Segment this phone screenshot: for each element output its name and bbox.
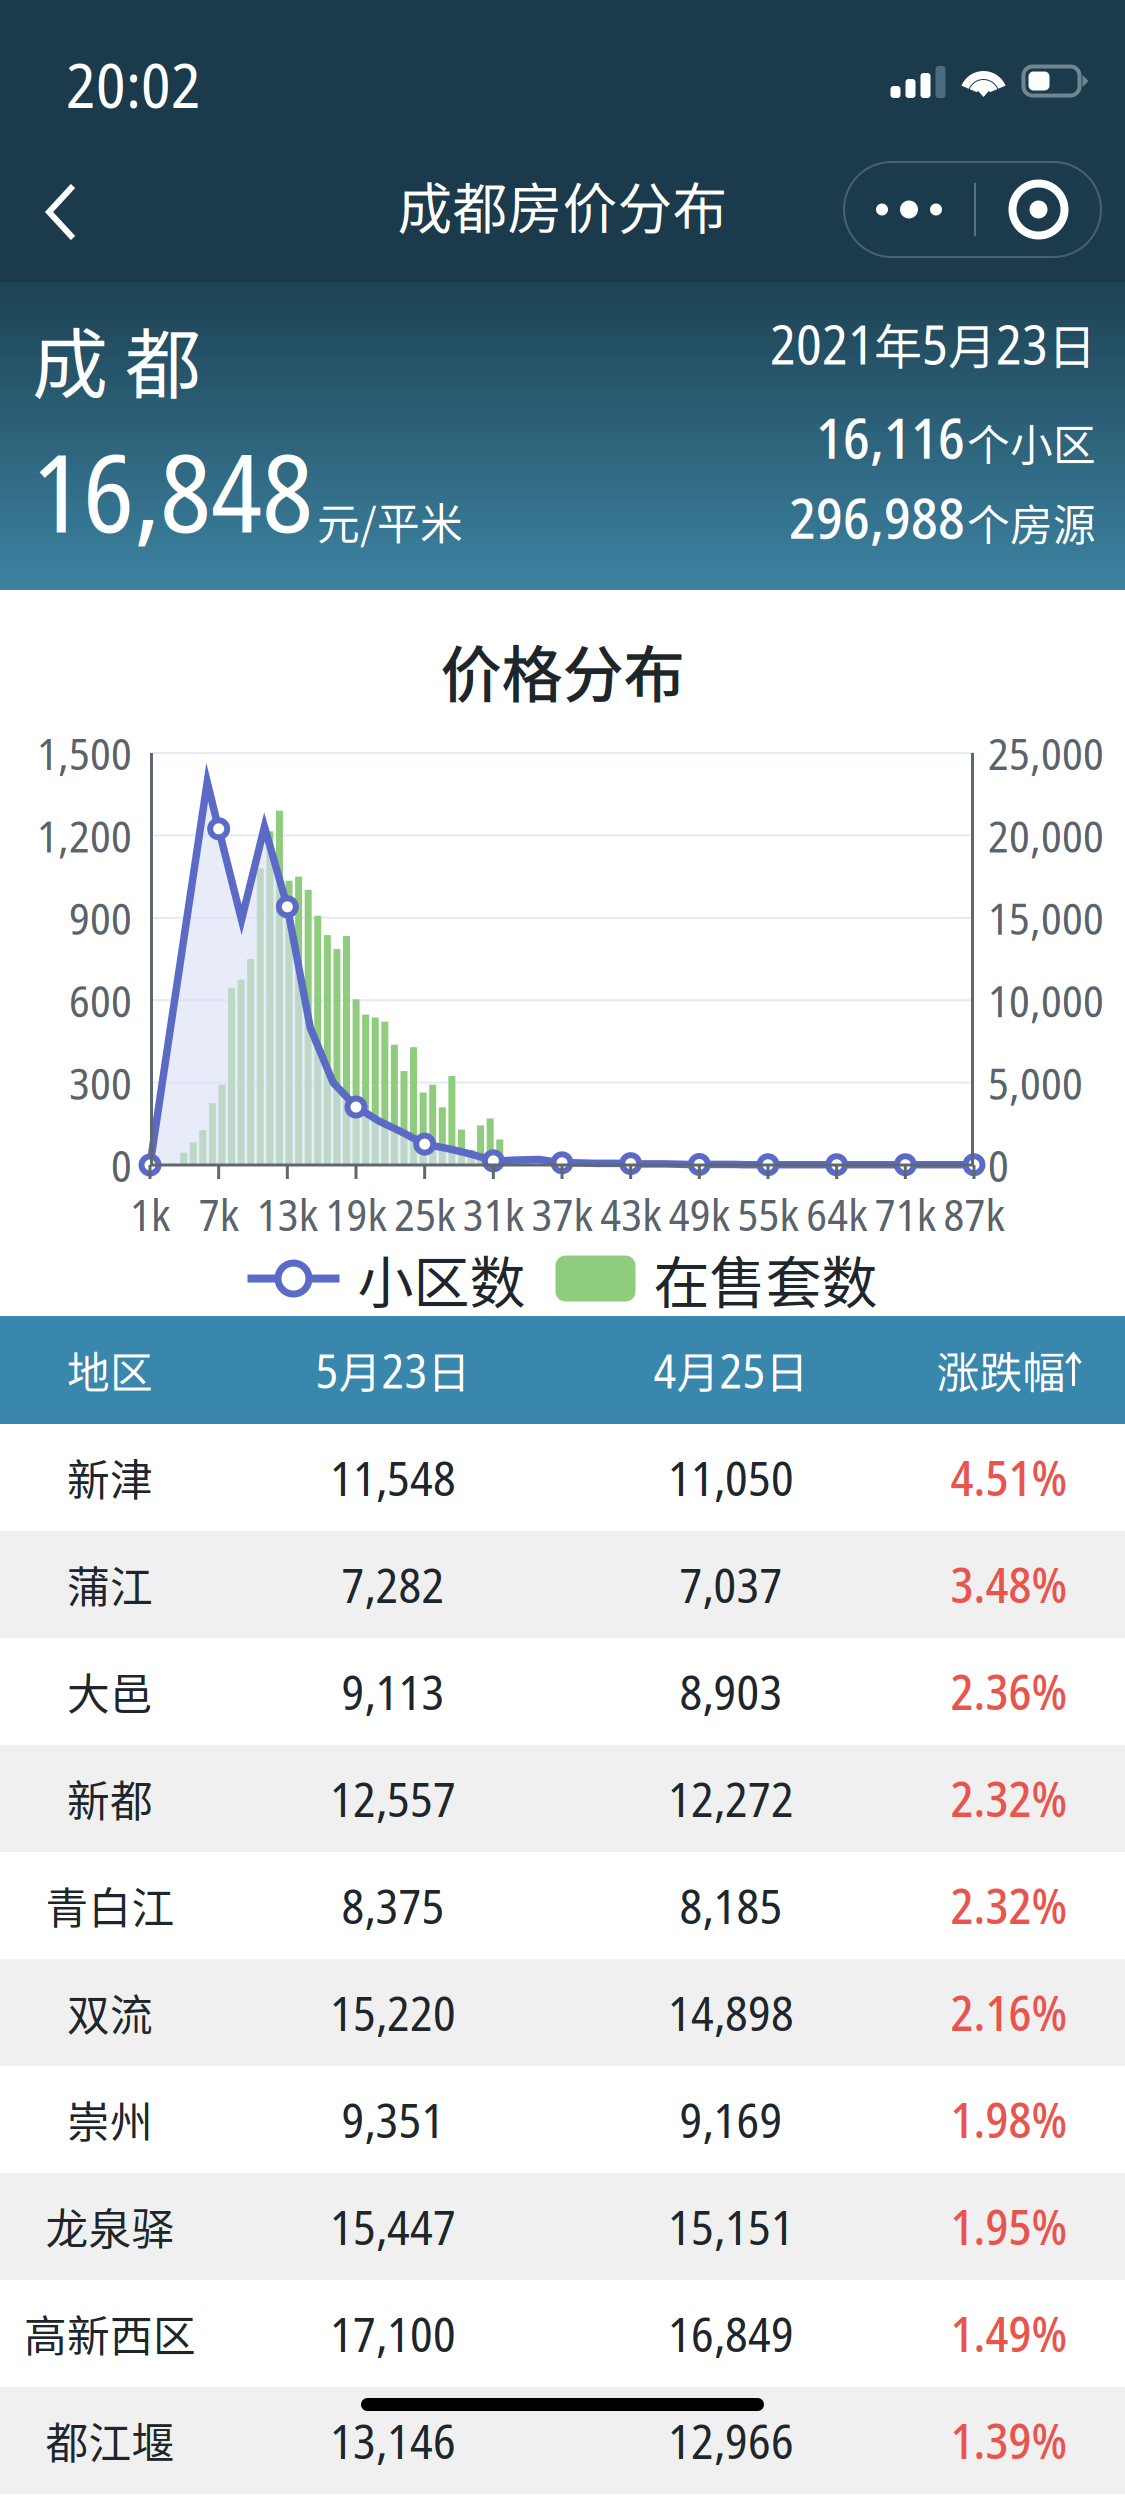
staticText: 青白江 [45, 1875, 174, 1936]
staticText: 日 [765, 1339, 808, 1401]
staticText: 2.32% [950, 1766, 1067, 1831]
button[interactable]: Back [0, 161, 110, 263]
button[interactable]: More options [844, 162, 974, 257]
staticText: 0 [111, 1135, 132, 1195]
staticText: 9,169 [679, 2087, 782, 2152]
staticText: 小区数 [357, 1238, 525, 1319]
staticText: 31k [463, 1184, 524, 1244]
button[interactable]: 崇州 [0, 2066, 1125, 2173]
staticText: 300 [69, 1053, 132, 1112]
staticText: 0 [988, 1135, 1009, 1195]
staticText: 1.95% [950, 2194, 1067, 2259]
staticText: 9,113 [341, 1659, 444, 1724]
button[interactable]: 龙泉驿 [0, 2173, 1125, 2280]
staticText: 成都房价分布 [397, 165, 727, 244]
button[interactable]: 涨跌幅 [0, 1316, 310, 1424]
staticText: 双流 [67, 1982, 153, 2043]
staticText: 1.39% [950, 2408, 1067, 2473]
staticText: 3.48% [950, 1552, 1067, 1617]
button[interactable]: Close mini program [976, 162, 1101, 257]
staticText: 新津 [67, 1447, 153, 1508]
staticText: 崇州 [67, 2089, 153, 2150]
staticText: 13,146 [330, 2408, 456, 2473]
staticText: 5 [315, 1337, 338, 1403]
staticText: 2021 [770, 306, 874, 380]
staticText: 16,116 [816, 399, 965, 475]
staticText: 8,185 [679, 1873, 782, 1938]
staticText: 月 [338, 1339, 381, 1401]
staticText: 个房源 [967, 491, 1096, 553]
staticText: 15,151 [668, 2194, 794, 2259]
staticText: 元/平米 [317, 490, 463, 552]
staticText: 17,100 [330, 2301, 456, 2366]
staticText: 15,000 [988, 888, 1104, 948]
staticText: 11,548 [330, 1445, 456, 1510]
button[interactable]: 高新西区 [0, 2280, 1125, 2387]
staticText: 87k [943, 1184, 1004, 1244]
staticText: 1,200 [37, 805, 132, 865]
staticText: 成 都 [32, 304, 201, 414]
staticText: 10,000 [988, 970, 1104, 1030]
staticText: 14,898 [668, 1980, 794, 2045]
staticText: 4.51% [950, 1445, 1067, 1510]
staticText: 15,220 [330, 1980, 456, 2045]
button[interactable]: 新都 [0, 1745, 1125, 1852]
staticText: 600 [69, 970, 132, 1030]
staticText: 7,282 [341, 1552, 444, 1617]
staticText: 在售套数 [653, 1238, 877, 1319]
staticText: 2.32% [950, 1873, 1067, 1938]
button[interactable]: 新津 [0, 1424, 1125, 1531]
staticText: 25,000 [988, 723, 1104, 783]
staticText: 个小区 [967, 411, 1096, 473]
staticText: 49k [669, 1184, 730, 1244]
staticText: 12,966 [668, 2408, 794, 2473]
staticText: 19k [325, 1184, 386, 1244]
button[interactable]: 蒲江 [0, 1531, 1125, 1638]
button[interactable]: 大邑 [0, 1638, 1125, 1745]
staticText: 64k [806, 1184, 867, 1244]
staticText: 涨跌幅 [936, 1339, 1065, 1401]
staticText: 2.36% [950, 1659, 1067, 1724]
staticText: 25 [719, 1337, 765, 1403]
staticText: 龙泉驿 [45, 2196, 174, 2257]
staticText: 4 [653, 1337, 676, 1403]
staticText: 1k [130, 1184, 170, 1244]
button[interactable]: 青白江 [0, 1852, 1125, 1959]
staticText: 23 [996, 306, 1048, 380]
staticText: 新都 [67, 1768, 153, 1829]
staticText: 900 [69, 888, 132, 948]
staticText: 55k [737, 1184, 798, 1244]
staticText: 都江堰 [45, 2410, 174, 2471]
staticText: 296,988 [789, 479, 965, 555]
staticText: 11,050 [668, 1445, 794, 1510]
staticText: 日 [427, 1339, 470, 1401]
staticText: 23 [381, 1337, 427, 1403]
staticText: 年 [874, 308, 922, 378]
staticText: 25k [394, 1184, 455, 1244]
staticText: 71k [875, 1184, 936, 1244]
staticText: 日 [1048, 308, 1096, 378]
staticText: 9,351 [341, 2087, 444, 2152]
staticText: 20,000 [988, 805, 1104, 865]
staticText: 12,557 [330, 1766, 456, 1831]
staticText: 蒲江 [67, 1554, 153, 1615]
button[interactable]: 双流 [0, 1959, 1125, 2066]
staticText: 7,037 [679, 1552, 782, 1617]
staticText: 20:02 [66, 41, 201, 126]
staticText: 37k [531, 1184, 592, 1244]
staticText: 16,849 [668, 2301, 794, 2366]
staticText: 15,447 [330, 2194, 456, 2259]
staticText: 8,903 [679, 1659, 782, 1724]
staticText: 1.98% [950, 2087, 1067, 2152]
staticText: 7k [199, 1184, 239, 1244]
staticText: 8,375 [341, 1873, 444, 1938]
staticText: 月 [676, 1339, 719, 1401]
staticText: 1,500 [37, 723, 132, 783]
staticText: 1.49% [950, 2301, 1067, 2366]
staticText: 价格分布 [440, 626, 684, 715]
staticText: 月 [948, 308, 996, 378]
staticText: 高新西区 [24, 2303, 196, 2364]
staticText: 12,272 [668, 1766, 794, 1831]
staticText: 13k [257, 1184, 318, 1244]
button[interactable]: 都江堰 [0, 2387, 1125, 2494]
